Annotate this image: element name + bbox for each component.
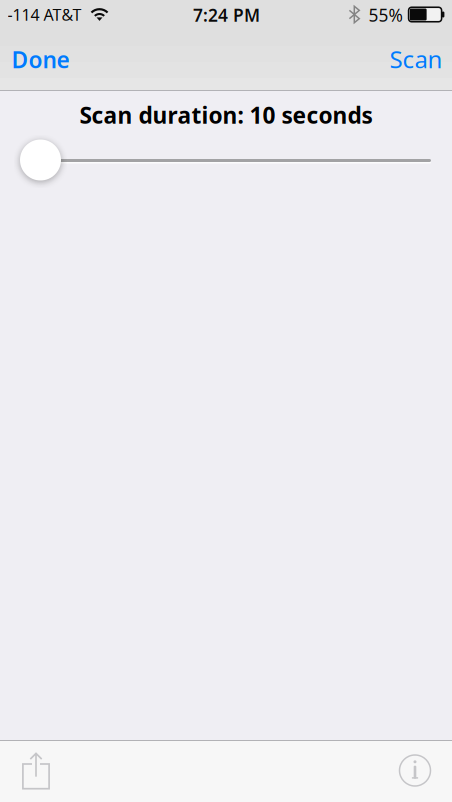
staticText: Scan [389,43,442,75]
staticText: 55% [368,3,402,26]
button[interactable]: Share [9,743,63,799]
staticText: Done [11,44,69,74]
staticText: 7:24 PM [193,3,260,26]
button[interactable]: Done [0,33,89,85]
staticText: -114 AT&T [7,4,81,25]
button[interactable]: Info [390,742,440,798]
staticText: Scan duration: 10 seconds [79,100,372,130]
button[interactable]: Scan duration [20,137,452,183]
button[interactable]: Scan [366,33,452,85]
